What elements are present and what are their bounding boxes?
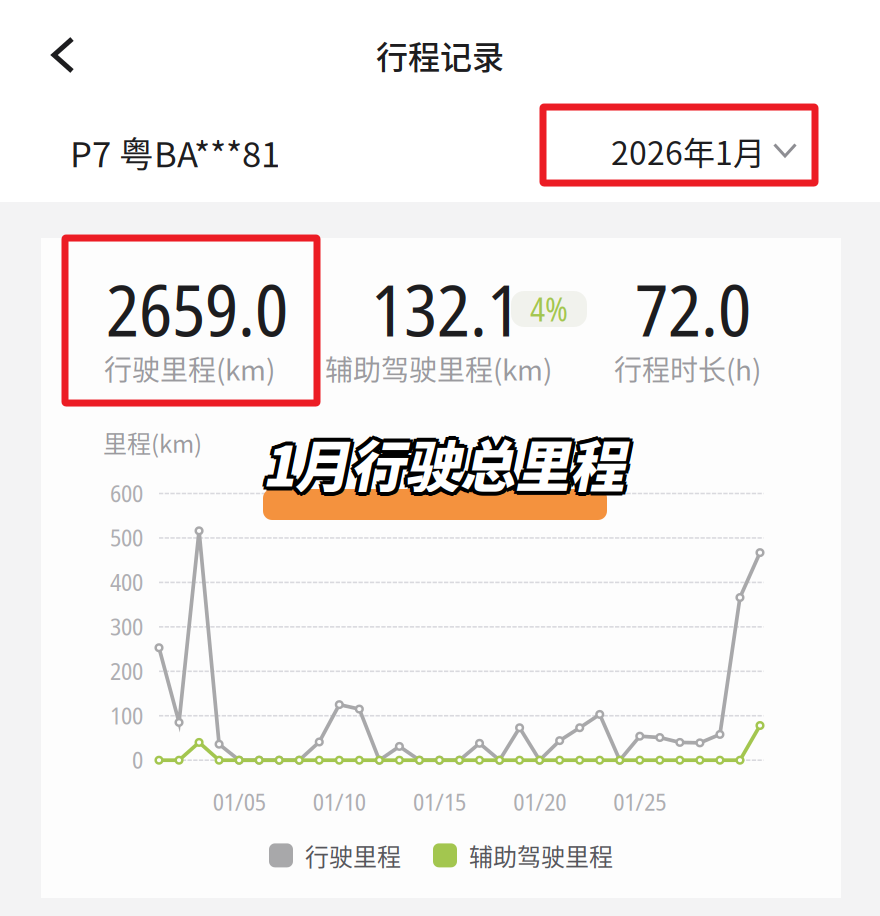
staticText: 01/25 xyxy=(613,785,666,818)
staticText: 辅助驾驶里程(km) xyxy=(325,348,552,388)
staticText: 100 xyxy=(110,699,143,731)
staticText: 500 xyxy=(110,521,143,554)
staticText: 行驶里程(km) xyxy=(104,348,275,388)
staticText: 01/10 xyxy=(313,785,366,818)
staticText: 400 xyxy=(110,565,143,598)
button[interactable]: 返回 xyxy=(21,15,105,95)
staticText: 行程记录 xyxy=(376,32,504,78)
staticText: 1月行驶总里程 xyxy=(259,426,622,505)
staticText: P7 粤BA***81 xyxy=(70,127,280,177)
staticText: 行驶里程 xyxy=(305,838,401,873)
staticText: 1月行驶总里程 xyxy=(262,419,625,498)
staticText: 4% xyxy=(530,287,568,331)
staticText: 600 xyxy=(110,476,143,509)
staticText: 300 xyxy=(110,610,143,643)
staticText: 01/20 xyxy=(513,785,566,818)
staticText: 1月行驶总里程 xyxy=(265,426,628,505)
staticText: 里程(km) xyxy=(103,425,202,460)
staticText: 1月行驶总里程 xyxy=(265,420,628,499)
staticText: 辅助驾驶里程 xyxy=(469,838,613,873)
button[interactable]: 2026年1月 xyxy=(543,107,880,916)
staticText: 01/05 xyxy=(213,785,266,818)
staticText: 01/15 xyxy=(413,785,466,818)
staticText: 1月行驶总里程 xyxy=(262,427,625,506)
staticText: 1月行驶总里程 xyxy=(259,420,622,499)
staticText: 1月行驶总里程 xyxy=(266,423,629,502)
staticText: 1月行驶总里程 xyxy=(258,423,621,502)
staticText: 2659.0 xyxy=(106,261,288,357)
staticText: 0 xyxy=(132,743,143,776)
staticText: 行程时长(h) xyxy=(614,348,761,388)
staticText: 2026年1月 xyxy=(611,128,765,174)
staticText: 200 xyxy=(110,654,143,687)
staticText: 1月行驶总里程 xyxy=(262,423,625,502)
staticText: 72.0 xyxy=(635,261,751,357)
staticText: 132.1 xyxy=(371,261,520,357)
